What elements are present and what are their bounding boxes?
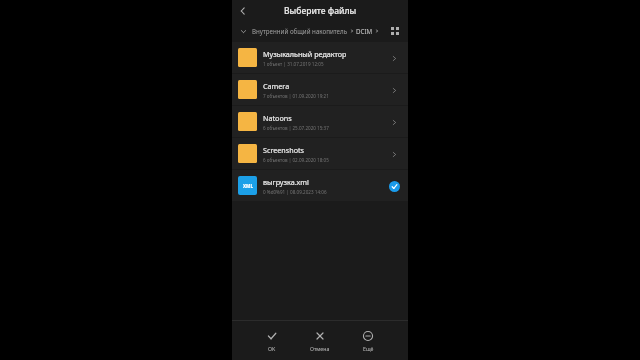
staticText: Выберите файлы [284, 5, 357, 17]
staticText: XML [243, 183, 253, 189]
staticText: выгрузка.xml [263, 177, 309, 187]
button[interactable]: Expand path [237, 25, 249, 37]
staticText: DCIM [356, 27, 373, 35]
button[interactable]: Grid view [387, 23, 403, 39]
button[interactable]: Back [232, 0, 254, 22]
staticText: Внутренний общий накопитель [252, 27, 348, 35]
button[interactable]: Музыкальный редактор [232, 42, 408, 73]
button[interactable]: Screenshots [232, 138, 408, 169]
staticText: Camera [263, 81, 290, 91]
button[interactable]: Внутренний общий накопитель [252, 27, 387, 35]
staticText: Natoons [263, 113, 292, 123]
staticText: Screenshots [263, 145, 305, 155]
staticText: Отмена [310, 345, 330, 352]
staticText: 6 объектов | 25.07.2020 15:37 [263, 125, 329, 131]
staticText: 1 объект | 31.07.2019 12:05 [263, 61, 324, 67]
staticText: Музыкальный редактор [263, 49, 347, 59]
button[interactable]: OK [255, 327, 289, 355]
staticText: OK [268, 345, 276, 352]
button[interactable]: Отмена [303, 327, 337, 355]
staticText: 0 %d0%91 | 08.09.2023 14:06 [263, 189, 327, 195]
button[interactable]: Camera [232, 74, 408, 105]
button[interactable]: Ещё [351, 327, 385, 355]
staticText: 7 объектов | 01.09.2020 19:21 [263, 93, 329, 99]
button[interactable]: XML [232, 170, 408, 201]
staticText: Ещё [363, 345, 374, 352]
button[interactable]: Natoons [232, 106, 408, 137]
staticText: 6 объектов | 02.09.2020 18:05 [263, 157, 329, 163]
